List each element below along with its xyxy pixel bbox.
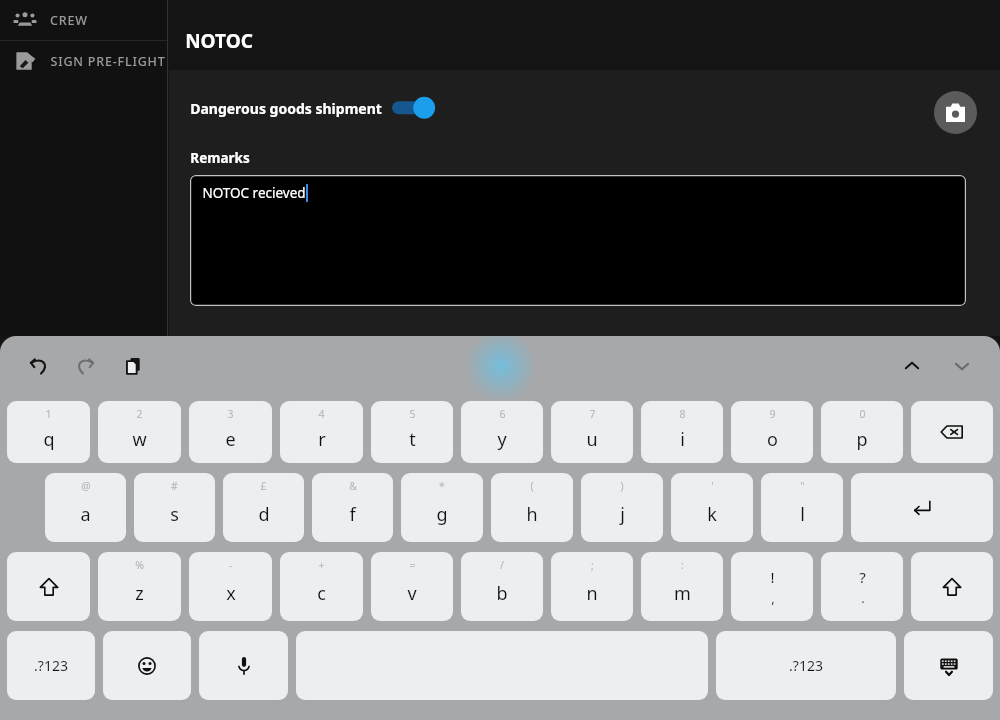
staticText: 6 <box>499 407 506 421</box>
button[interactable]: ) <box>581 473 663 542</box>
button[interactable]: ! <box>731 552 813 621</box>
staticText: ' <box>711 479 714 493</box>
staticText: . <box>861 589 865 607</box>
staticText: ? <box>859 567 866 587</box>
button[interactable]: Shift <box>911 552 993 621</box>
staticText: x <box>226 581 236 606</box>
staticText: l <box>800 502 805 527</box>
button[interactable]: 6 <box>461 401 543 463</box>
button[interactable]: Backspace <box>911 401 993 463</box>
staticText: v <box>407 581 417 606</box>
button[interactable]: @ <box>45 473 126 542</box>
staticText: 8 <box>679 407 686 421</box>
button[interactable]: Emoji <box>103 631 191 700</box>
staticText: 7 <box>589 407 596 421</box>
button[interactable]: Take photo <box>934 91 977 134</box>
button[interactable]: Hide keyboard <box>904 631 993 700</box>
staticText: w <box>132 427 147 452</box>
staticText: .?123 <box>789 656 823 675</box>
staticText: o <box>767 427 778 452</box>
button[interactable]: Dangerous goods shipment <box>190 95 438 121</box>
staticText: CREW <box>50 12 88 29</box>
button[interactable]: .?123 <box>7 631 95 700</box>
staticText: NOTOC <box>185 28 253 54</box>
button[interactable]: * <box>401 473 483 542</box>
button[interactable]: £ <box>223 473 304 542</box>
staticText: NOTOC recieved <box>202 184 306 202</box>
staticText: y <box>497 427 507 452</box>
button[interactable]: 7 <box>551 401 633 463</box>
staticText: Dangerous goods shipment <box>190 99 382 118</box>
staticText: & <box>349 479 357 493</box>
staticText: + <box>318 558 325 572</box>
button[interactable]: ? <box>821 552 903 621</box>
button[interactable]: Previous field <box>896 350 928 382</box>
button[interactable]: 1 <box>7 401 90 463</box>
staticText: g <box>436 502 448 527</box>
staticText: a <box>80 502 91 527</box>
staticText: p <box>856 427 868 452</box>
staticText: / <box>500 558 504 572</box>
staticText: i <box>680 427 685 452</box>
button[interactable]: CREW <box>0 0 167 40</box>
staticText: m <box>674 581 691 606</box>
staticText: - <box>229 558 233 572</box>
button[interactable]: - <box>189 552 272 621</box>
button[interactable]: .?123 <box>716 631 896 700</box>
button[interactable]: & <box>312 473 393 542</box>
button[interactable]: Shift <box>7 552 90 621</box>
button[interactable]: " <box>761 473 843 542</box>
button[interactable]: Clipboard <box>118 350 150 382</box>
staticText: j <box>620 502 625 527</box>
button[interactable]: Enter <box>851 473 993 542</box>
button[interactable]: 0 <box>821 401 903 463</box>
staticText: s <box>170 502 179 527</box>
staticText: e <box>225 427 236 452</box>
staticText: c <box>317 581 326 606</box>
staticText: ; <box>591 558 594 572</box>
button[interactable]: % <box>98 552 181 621</box>
staticText: 4 <box>318 407 325 421</box>
button[interactable]: ; <box>551 552 633 621</box>
button[interactable]: NOTOC recieved <box>190 175 966 306</box>
button[interactable]: Next field <box>946 350 978 382</box>
staticText: u <box>586 427 598 452</box>
button[interactable]: Redo <box>70 350 102 382</box>
button[interactable]: + <box>280 552 363 621</box>
button[interactable]: # <box>134 473 215 542</box>
button[interactable]: : <box>641 552 723 621</box>
button[interactable]: 4 <box>280 401 363 463</box>
staticText: " <box>800 479 805 493</box>
button[interactable]: = <box>371 552 453 621</box>
button[interactable]: 5 <box>371 401 453 463</box>
staticText: h <box>526 502 538 527</box>
staticText: f <box>349 502 356 527</box>
staticText: .?123 <box>34 656 68 675</box>
button[interactable]: 3 <box>189 401 272 463</box>
staticText: 9 <box>769 407 776 421</box>
button[interactable]: SIGN PRE-FLIGHT <box>0 41 167 81</box>
staticText: d <box>258 502 270 527</box>
button[interactable]: Undo <box>22 350 54 382</box>
button[interactable]: ( <box>491 473 573 542</box>
staticText: b <box>496 581 508 606</box>
button[interactable]: Space <box>296 631 708 700</box>
staticText: @ <box>81 479 91 493</box>
staticText: z <box>135 581 144 606</box>
staticText: SIGN PRE-FLIGHT <box>50 53 166 70</box>
staticText: 2 <box>136 407 143 421</box>
staticText: t <box>409 427 416 452</box>
button[interactable]: ' <box>671 473 753 542</box>
staticText: % <box>135 558 144 572</box>
staticText: r <box>318 427 326 452</box>
button[interactable]: Voice input <box>199 631 288 700</box>
staticText: 3 <box>227 407 234 421</box>
button[interactable]: 2 <box>98 401 181 463</box>
staticText: 1 <box>45 407 52 421</box>
staticText: n <box>586 581 598 606</box>
button[interactable]: 8 <box>641 401 723 463</box>
staticText: , <box>771 589 775 607</box>
button[interactable]: 9 <box>731 401 813 463</box>
staticText: ) <box>620 479 624 493</box>
button[interactable]: / <box>461 552 543 621</box>
